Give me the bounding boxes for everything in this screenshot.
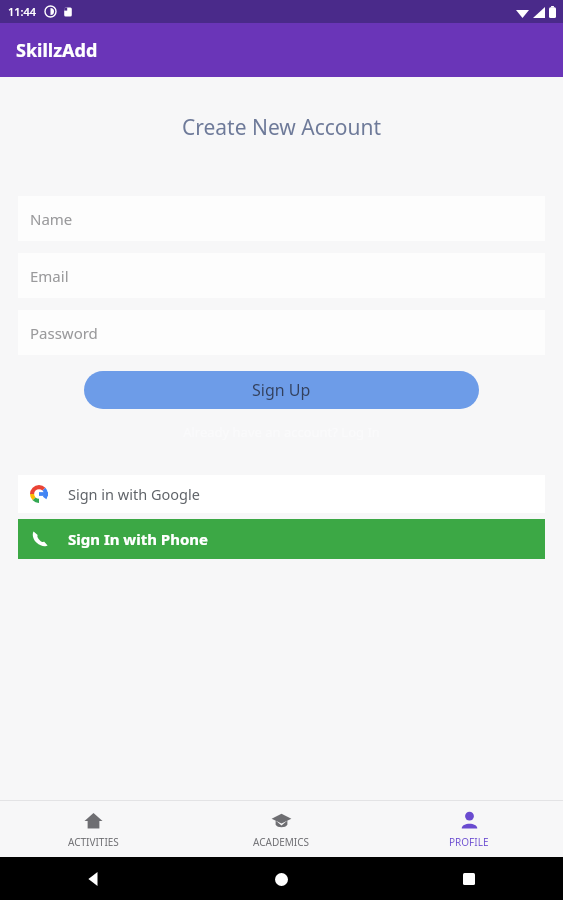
staticText: SkillzAdd	[16, 38, 98, 63]
staticText: ACADEMICS	[253, 835, 310, 849]
staticText: Sign Up	[252, 379, 311, 401]
staticText: Sign In with Phone	[68, 529, 208, 549]
button[interactable]: Sign Up	[84, 371, 479, 409]
button[interactable]: Password	[18, 310, 545, 355]
button[interactable]: Email	[18, 253, 545, 298]
staticText: PROFILE	[449, 835, 489, 849]
staticText: ACTIVITIES	[68, 835, 119, 849]
staticText: Create New Account	[0, 113, 563, 142]
staticText: Name	[30, 209, 73, 229]
button[interactable]: Name	[18, 196, 545, 241]
button[interactable]: ACADEMICS	[187, 801, 375, 857]
button[interactable]: Sign in with Google	[18, 475, 545, 513]
button[interactable]: PROFILE	[375, 801, 563, 857]
staticText: Email	[30, 266, 69, 286]
staticText: Sign in with Google	[68, 484, 200, 504]
staticText: 11:44	[8, 4, 37, 19]
button[interactable]: ACTIVITIES	[0, 801, 187, 857]
staticText: Password	[30, 323, 98, 343]
button[interactable]: Sign In with Phone	[18, 519, 545, 559]
